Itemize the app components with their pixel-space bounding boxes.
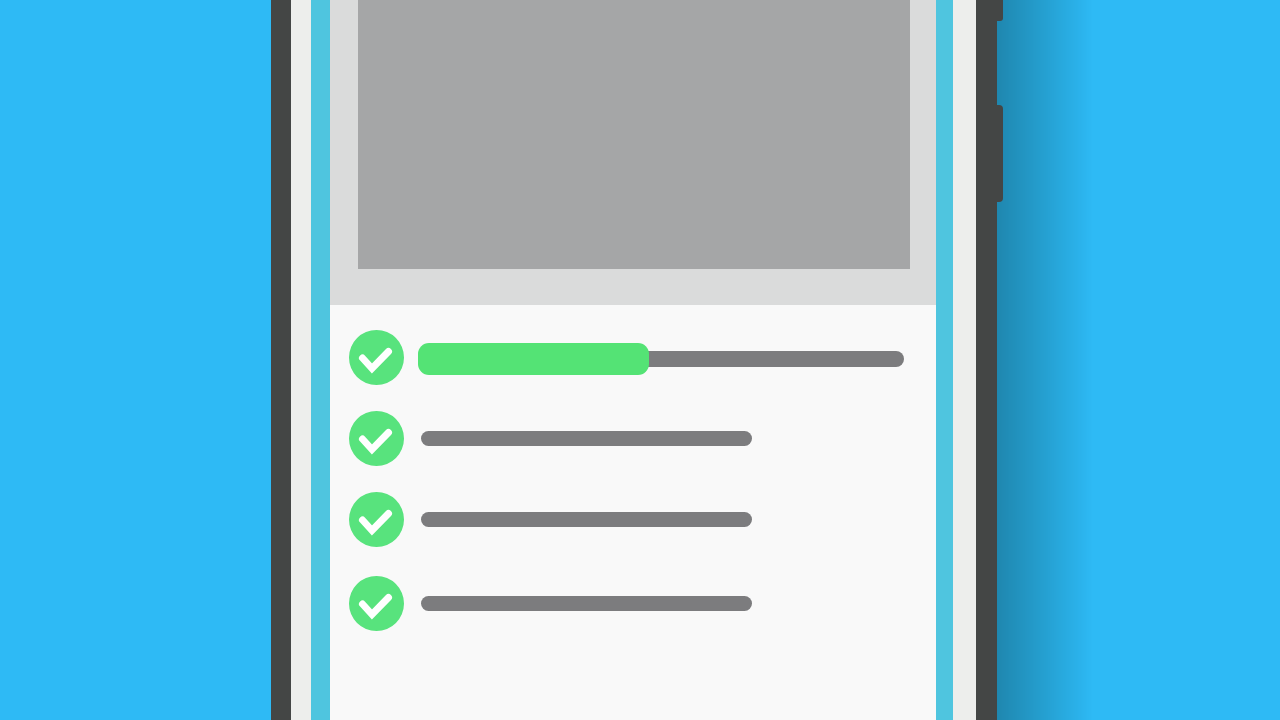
button[interactable]: Power button bbox=[990, 105, 1003, 202]
button[interactable]: Completed task bbox=[330, 330, 936, 385]
button[interactable]: Cover photo bbox=[330, 0, 936, 305]
button[interactable]: Completed task bbox=[330, 492, 936, 547]
button[interactable]: Volume button bbox=[990, 0, 1003, 21]
button[interactable]: Completed task bbox=[330, 411, 936, 466]
button[interactable]: Completed task bbox=[330, 576, 936, 631]
